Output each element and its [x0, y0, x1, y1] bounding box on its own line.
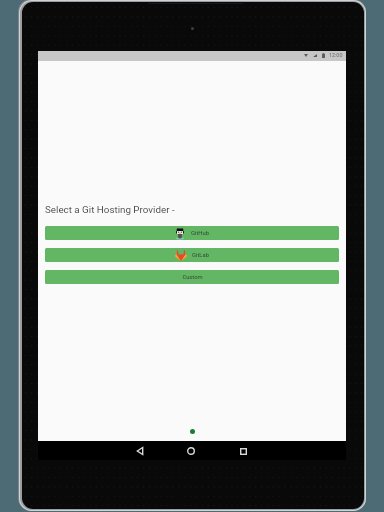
button[interactable]: Home: [182, 442, 200, 460]
button[interactable]: Recent apps: [234, 442, 252, 460]
button[interactable]: GitHub: [45, 226, 339, 240]
button[interactable]: Back: [131, 442, 149, 460]
staticText: 12:00: [329, 52, 343, 58]
staticText: Custom: [182, 274, 203, 281]
staticText: GitHub: [191, 230, 209, 237]
staticText: Select a Git Hosting Provider -: [45, 204, 175, 215]
button[interactable]: GitLab: [45, 248, 339, 262]
staticText: GitLab: [192, 252, 209, 259]
button[interactable]: Custom: [45, 270, 339, 284]
